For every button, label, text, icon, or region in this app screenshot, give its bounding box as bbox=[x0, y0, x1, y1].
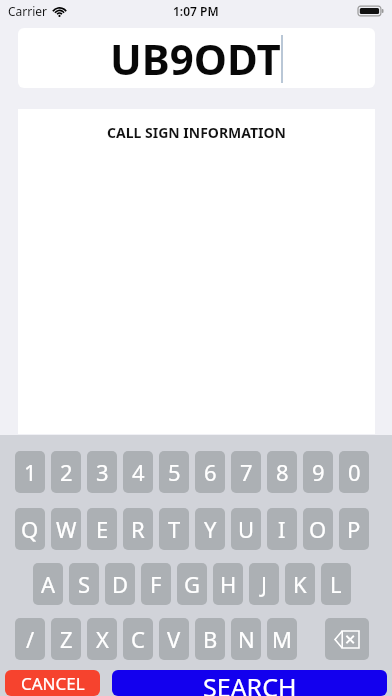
button[interactable]: J bbox=[249, 563, 279, 605]
staticText: J bbox=[261, 569, 268, 599]
button[interactable]: V bbox=[159, 618, 189, 660]
button[interactable]: T bbox=[159, 508, 189, 550]
button[interactable]: U bbox=[231, 508, 261, 550]
button[interactable]: 0 bbox=[339, 451, 369, 493]
staticText: D bbox=[112, 569, 129, 599]
button[interactable]: / bbox=[15, 618, 45, 660]
button[interactable]: A bbox=[33, 563, 63, 605]
staticText: K bbox=[293, 569, 307, 599]
staticText: 7 bbox=[240, 457, 253, 487]
button[interactable]: L bbox=[321, 563, 351, 605]
staticText: W bbox=[56, 514, 77, 544]
button[interactable]: Y bbox=[195, 508, 225, 550]
button[interactable]: UB9ODT bbox=[18, 28, 375, 88]
button[interactable]: E bbox=[87, 508, 117, 550]
staticText: Z bbox=[60, 624, 73, 654]
button[interactable]: I bbox=[267, 508, 297, 550]
button[interactable]: 1 bbox=[15, 451, 45, 493]
staticText: / bbox=[26, 624, 35, 654]
button[interactable]: 3 bbox=[87, 451, 117, 493]
button[interactable]: 9 bbox=[303, 451, 333, 493]
staticText: U bbox=[238, 514, 255, 544]
button[interactable]: 2 bbox=[51, 451, 81, 493]
button[interactable]: R bbox=[123, 508, 153, 550]
staticText: M bbox=[272, 624, 292, 654]
button[interactable]: 4 bbox=[123, 451, 153, 493]
staticText: E bbox=[96, 514, 109, 544]
staticText: N bbox=[238, 624, 255, 654]
button[interactable]: 6 bbox=[195, 451, 225, 493]
button[interactable]: B bbox=[195, 618, 225, 660]
button[interactable]: G bbox=[177, 563, 207, 605]
button[interactable]: 7 bbox=[231, 451, 261, 493]
button[interactable]: H bbox=[213, 563, 243, 605]
staticText: 5 bbox=[168, 457, 181, 487]
staticText: 9 bbox=[312, 457, 325, 487]
staticText: O bbox=[309, 514, 327, 544]
button[interactable]: Q bbox=[15, 508, 45, 550]
button[interactable]: Backspace bbox=[325, 618, 369, 660]
staticText: H bbox=[220, 569, 237, 599]
button[interactable]: D bbox=[105, 563, 135, 605]
staticText: F bbox=[150, 569, 162, 599]
staticText: L bbox=[330, 569, 342, 599]
staticText: 8 bbox=[276, 457, 289, 487]
button[interactable]: W bbox=[51, 508, 81, 550]
button[interactable]: F bbox=[141, 563, 171, 605]
staticText: V bbox=[167, 624, 181, 654]
staticText: I bbox=[278, 514, 286, 544]
staticText: 6 bbox=[204, 457, 217, 487]
button[interactable]: CANCEL bbox=[5, 670, 100, 696]
staticText: Y bbox=[204, 514, 217, 544]
staticText: CALL SIGN INFORMATION bbox=[18, 123, 375, 142]
staticText: A bbox=[41, 569, 56, 599]
button[interactable]: P bbox=[339, 508, 369, 550]
button[interactable]: K bbox=[285, 563, 315, 605]
staticText: 0 bbox=[348, 457, 361, 487]
staticText: 4 bbox=[132, 457, 145, 487]
button[interactable]: N bbox=[231, 618, 261, 660]
button[interactable]: 5 bbox=[159, 451, 189, 493]
staticText: SEARCH bbox=[203, 670, 297, 696]
staticText: B bbox=[203, 624, 218, 654]
button[interactable]: 8 bbox=[267, 451, 297, 493]
staticText: 1:07 PM bbox=[173, 3, 219, 19]
staticText: G bbox=[184, 569, 201, 599]
button[interactable]: S bbox=[69, 563, 99, 605]
staticText: C bbox=[131, 624, 145, 654]
staticText: Carrier bbox=[8, 3, 48, 19]
staticText: UB9ODT bbox=[110, 30, 281, 87]
button[interactable]: O bbox=[303, 508, 333, 550]
staticText: Q bbox=[21, 514, 39, 544]
button[interactable]: C bbox=[123, 618, 153, 660]
staticText: R bbox=[131, 514, 145, 544]
button[interactable]: SEARCH bbox=[112, 670, 387, 696]
staticText: T bbox=[168, 514, 181, 544]
staticText: 3 bbox=[96, 457, 109, 487]
staticText: S bbox=[78, 569, 91, 599]
staticText: 1 bbox=[24, 457, 37, 487]
button[interactable]: M bbox=[267, 618, 297, 660]
staticText: X bbox=[96, 624, 109, 654]
staticText: P bbox=[347, 514, 361, 544]
button[interactable]: X bbox=[87, 618, 117, 660]
button[interactable]: Z bbox=[51, 618, 81, 660]
staticText: CANCEL bbox=[21, 672, 85, 695]
staticText: 2 bbox=[60, 457, 73, 487]
